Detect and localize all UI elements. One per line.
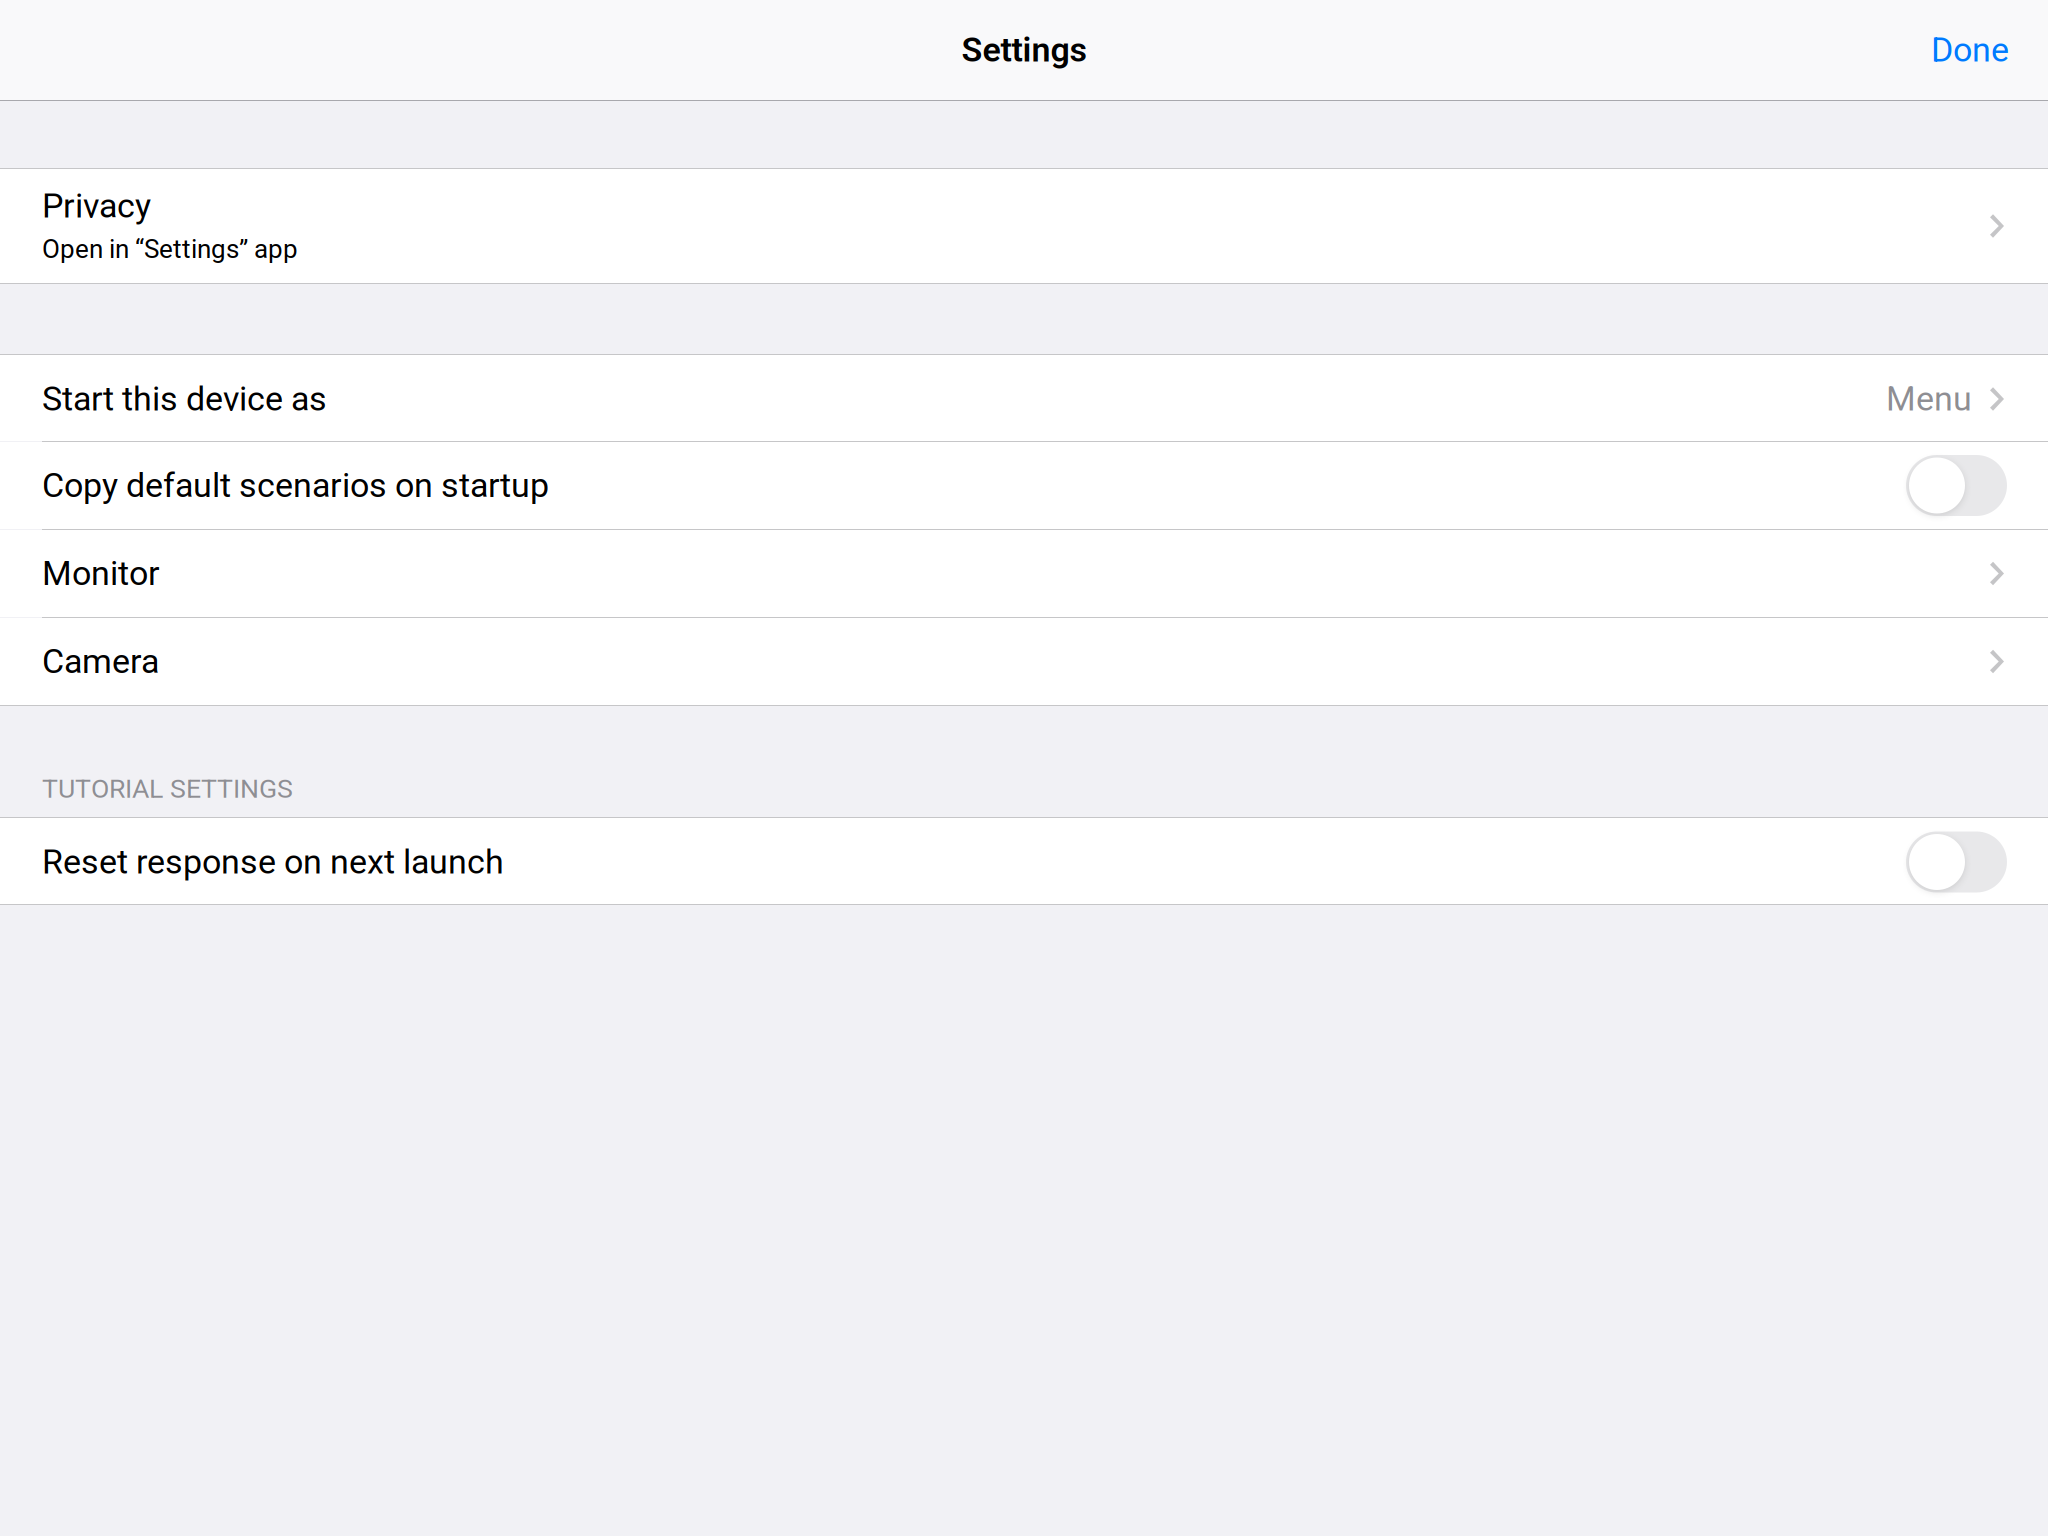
staticText: Open in “Settings” app bbox=[42, 234, 298, 264]
button[interactable]: Copy default scenarios on startup bbox=[0, 442, 2048, 529]
button[interactable]: Reset response on next launch bbox=[0, 818, 2048, 904]
staticText: Monitor bbox=[42, 554, 160, 593]
staticText: Privacy bbox=[42, 186, 151, 226]
staticText: Camera bbox=[42, 642, 159, 681]
staticText: Reset response on next launch bbox=[42, 842, 504, 882]
button[interactable]: Monitor bbox=[0, 530, 2048, 617]
staticText: Menu bbox=[1886, 379, 1972, 419]
staticText: TUTORIAL SETTINGS bbox=[42, 773, 293, 804]
staticText: Done bbox=[1931, 30, 2009, 70]
button[interactable]: Camera bbox=[0, 618, 2048, 705]
button[interactable]: Start this device as bbox=[0, 355, 2048, 441]
staticText: Copy default scenarios on startup bbox=[42, 466, 549, 505]
button[interactable]: Copy default scenarios on startup bbox=[1906, 455, 2007, 516]
button[interactable]: Done bbox=[1911, 14, 2029, 86]
staticText: Start this device as bbox=[42, 379, 327, 419]
button[interactable]: Reset response on next launch bbox=[1906, 831, 2007, 892]
button[interactable]: Privacy bbox=[0, 169, 2048, 283]
staticText: Settings bbox=[961, 30, 1086, 70]
